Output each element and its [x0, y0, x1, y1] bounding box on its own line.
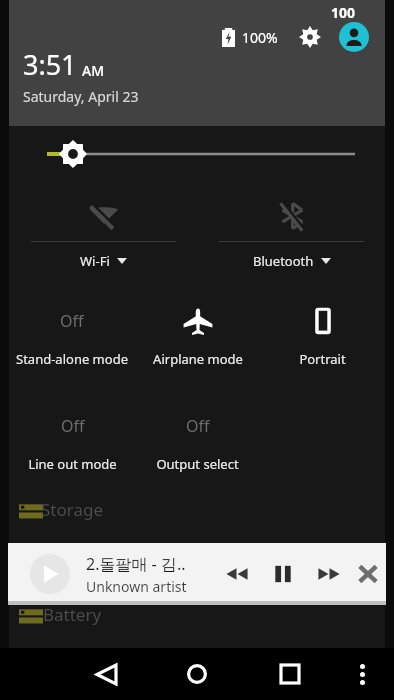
staticText: 3:51 — [23, 46, 77, 83]
staticText: Off — [60, 310, 84, 332]
button[interactable]: Bluetooth — [197, 190, 385, 270]
button[interactable]: Home — [171, 648, 223, 700]
staticText: Output select — [156, 455, 239, 473]
staticText: 100% — [242, 28, 278, 47]
staticText: Storage — [41, 498, 104, 521]
button[interactable]: Pause — [266, 557, 300, 591]
button[interactable]: More options — [340, 652, 384, 696]
button[interactable]: Recent apps — [264, 648, 316, 700]
button[interactable]: User profile — [337, 20, 371, 54]
staticText: Bluetooth — [253, 252, 314, 270]
staticText: Airplane mode — [153, 350, 243, 368]
button[interactable]: Storage — [9, 498, 135, 522]
staticText: Off — [186, 415, 210, 437]
button[interactable]: Off — [9, 288, 135, 368]
button[interactable]: Off — [9, 393, 135, 473]
staticText: Battery — [43, 603, 102, 626]
staticText: Line out mode — [28, 455, 117, 473]
staticText: Unknown artist — [86, 577, 187, 596]
staticText: Saturday, April 23 — [23, 87, 139, 106]
staticText: Portrait — [299, 350, 346, 368]
staticText: Stand-alone mode — [16, 350, 128, 368]
button[interactable]: Airplane mode — [135, 288, 260, 368]
staticText: 100 — [331, 3, 356, 22]
button[interactable]: Battery — [9, 603, 135, 627]
staticText: Wi-Fi — [80, 252, 110, 270]
button[interactable]: Settings — [297, 24, 323, 50]
button[interactable]: Brightness — [9, 126, 385, 182]
staticText: 2.돌팔매 - 김.. — [86, 553, 186, 575]
button[interactable]: Previous — [220, 557, 254, 591]
button[interactable]: Back — [80, 648, 132, 700]
other: Brightness — [47, 137, 355, 171]
button[interactable]: Close — [356, 557, 380, 591]
staticText: AM — [82, 61, 105, 80]
button[interactable]: Wi-Fi — [9, 190, 197, 270]
button[interactable]: Off — [135, 393, 260, 473]
button[interactable]: Next — [312, 557, 346, 591]
staticText: Off — [61, 415, 85, 437]
button[interactable]: Portrait — [260, 288, 385, 368]
